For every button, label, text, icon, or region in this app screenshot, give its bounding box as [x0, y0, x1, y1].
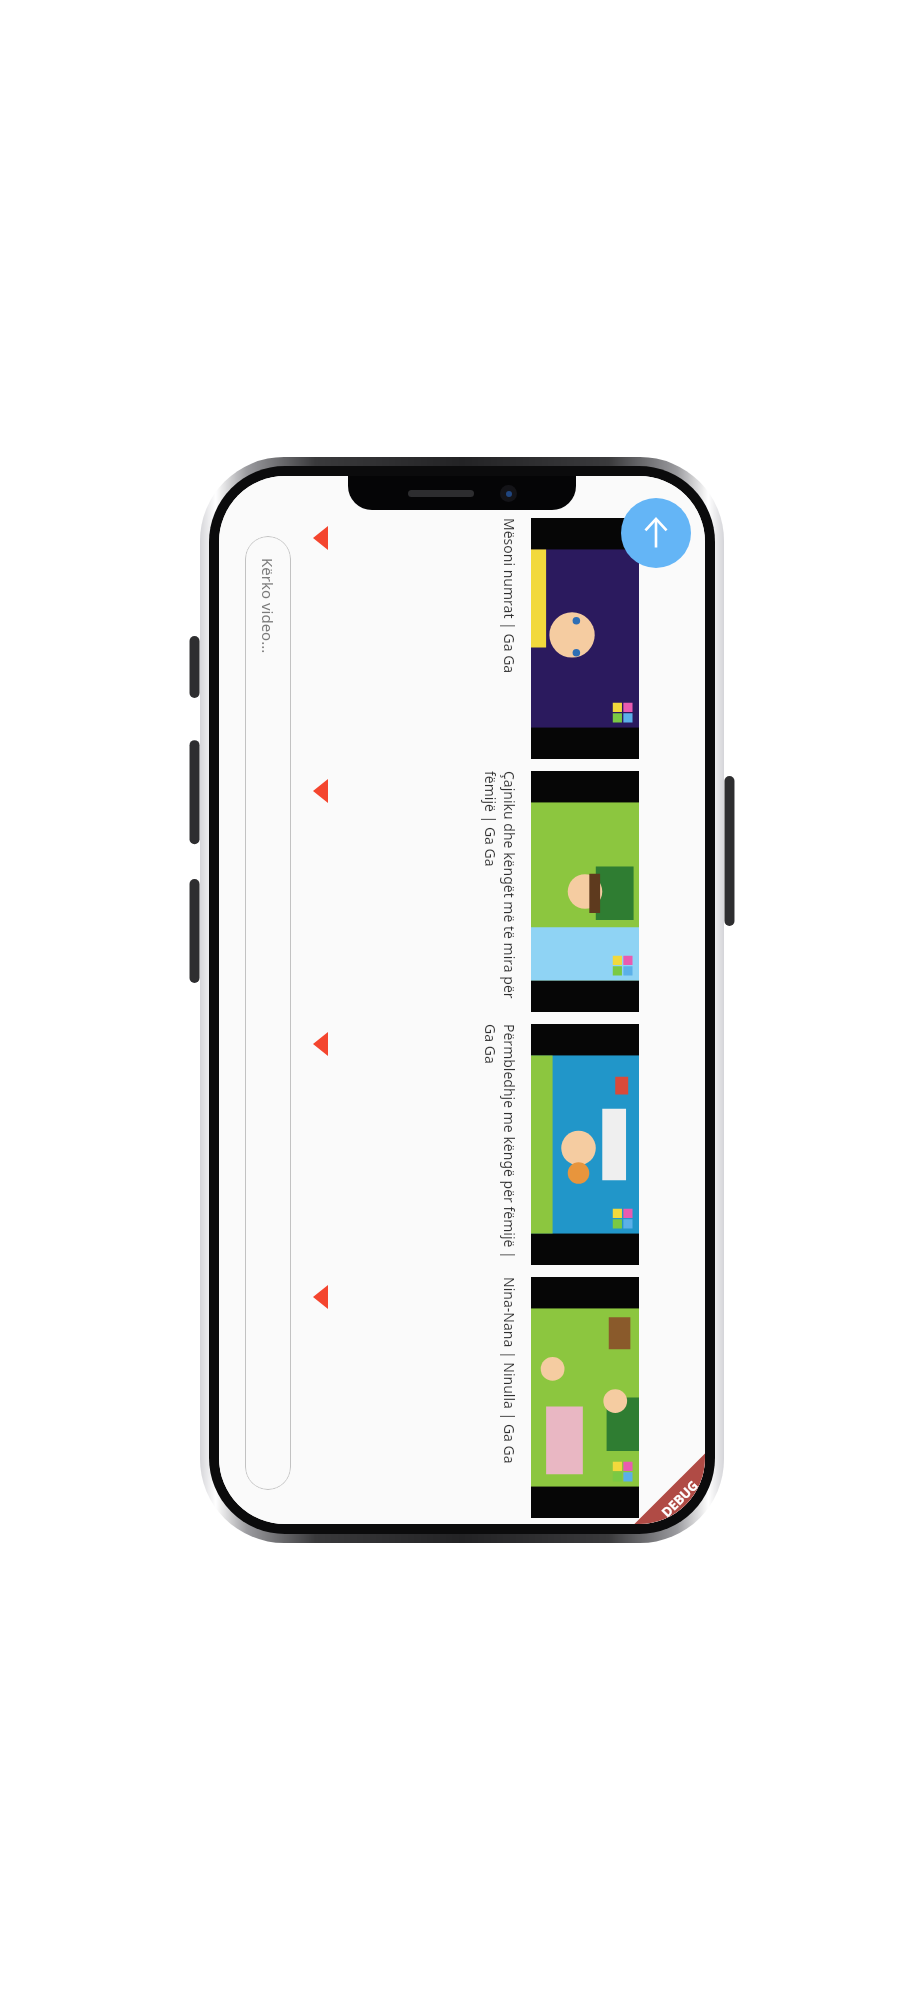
button[interactable]: Scroll to top — [621, 498, 691, 568]
button[interactable]: Çajniku dhe këngët më të mira për fëmijë… — [295, 771, 639, 1012]
staticText: DEBUG — [657, 1476, 702, 1521]
staticText: Kërko video... — [258, 558, 278, 654]
staticText: Çajniku dhe këngët më të mira për fëmijë… — [481, 771, 519, 1012]
staticText: Mësoni numrat | Ga Ga — [500, 518, 519, 674]
staticText: Përmbledhje me këngë për fëmijë | Ga Ga — [481, 1024, 519, 1265]
button[interactable]: Kërko video... — [245, 536, 291, 1490]
button[interactable]: Përmbledhje me këngë për fëmijë | Ga Ga — [295, 1024, 639, 1265]
button[interactable]: Nina-Nana | Ninulla | Ga Ga — [295, 1277, 639, 1518]
staticText: Nina-Nana | Ninulla | Ga Ga — [500, 1277, 519, 1464]
button[interactable]: Mësoni numrat | Ga Ga — [295, 518, 639, 759]
